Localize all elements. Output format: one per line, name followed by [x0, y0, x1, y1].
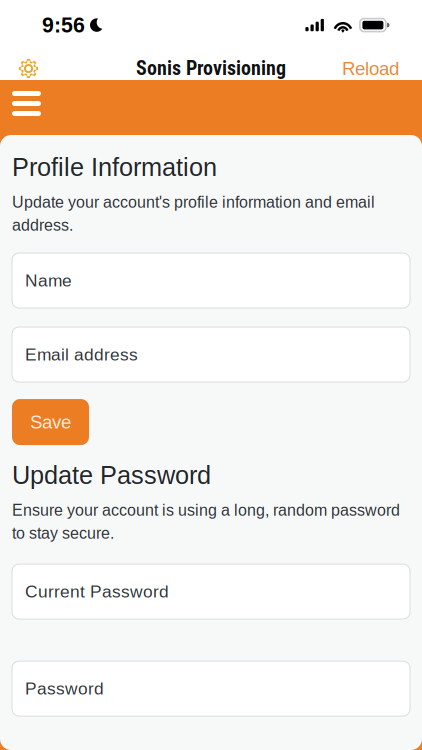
- staticText: Name: [25, 271, 72, 290]
- button[interactable]: Name: [12, 253, 410, 308]
- staticText: Save: [30, 412, 71, 432]
- staticText: Password: [25, 679, 104, 698]
- button[interactable]: Menu: [0, 80, 60, 135]
- staticText: Sonis Provisioning: [136, 57, 286, 80]
- button[interactable]: Save: [12, 399, 89, 445]
- staticText: Current Password: [25, 582, 169, 601]
- staticText: Profile Information: [12, 153, 217, 181]
- staticText: Email address: [25, 345, 138, 364]
- button[interactable]: Password: [12, 661, 410, 716]
- staticText: Reload: [342, 58, 399, 79]
- staticText: Ensure your account is using a long, ran…: [12, 501, 400, 542]
- button[interactable]: Current Password: [12, 564, 410, 619]
- staticText: Update Password: [12, 461, 211, 489]
- button[interactable]: Email address: [12, 327, 410, 382]
- button[interactable]: Settings: [0, 58, 49, 80]
- staticText: Update your account's profile informatio…: [12, 193, 375, 234]
- staticText: 9:56: [42, 13, 85, 37]
- button[interactable]: Reload: [332, 58, 422, 80]
